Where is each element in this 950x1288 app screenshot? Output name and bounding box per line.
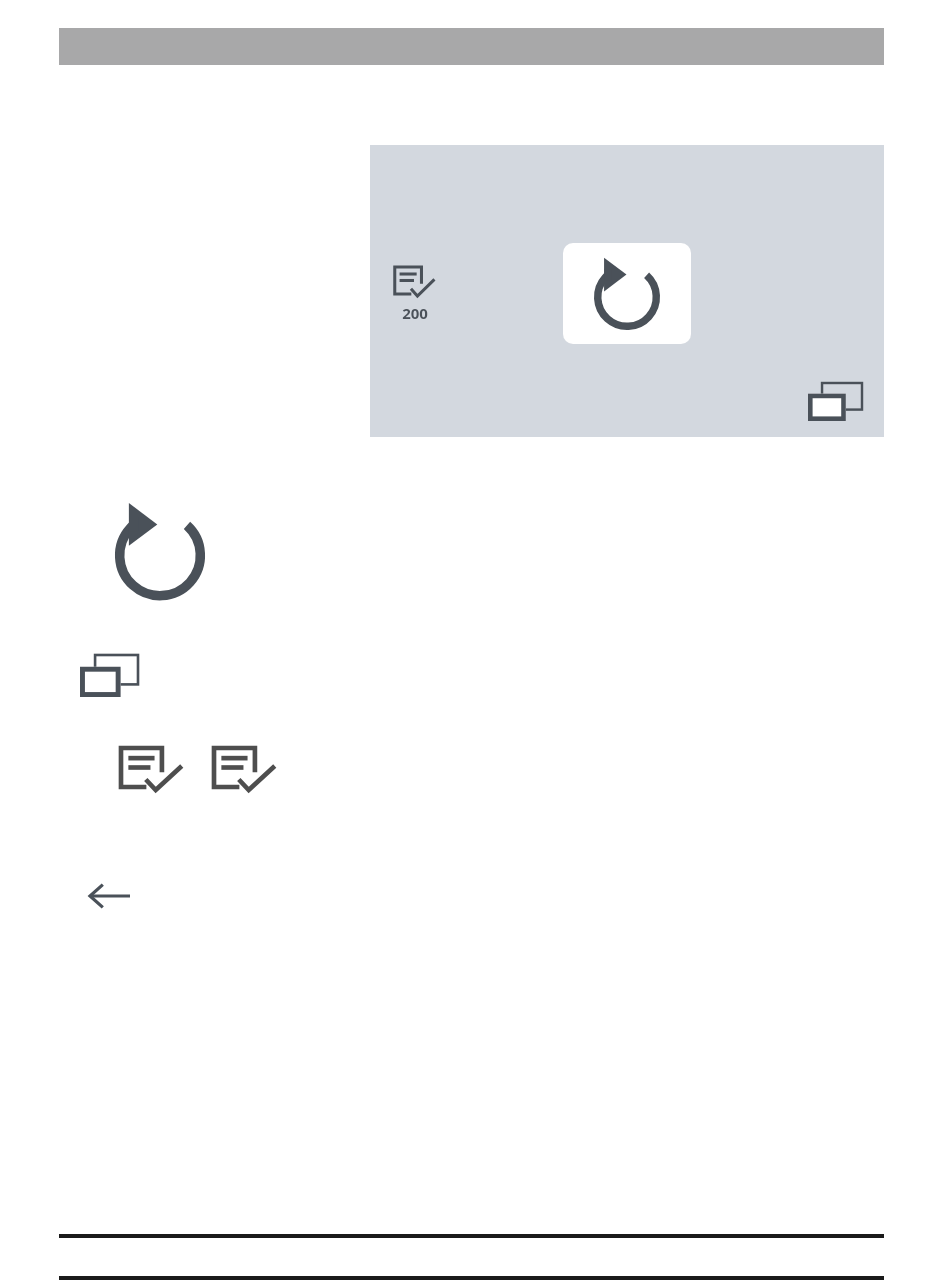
button[interactable]: Windows [808, 383, 862, 421]
button[interactable]: Task list complete [121, 748, 183, 798]
button[interactable]: Windows [80, 655, 138, 697]
button[interactable]: Refresh [112, 503, 208, 599]
button[interactable]: Task list complete [214, 748, 276, 798]
button[interactable]: 200 tasks complete [392, 267, 438, 321]
staticText: 200 [392, 303, 438, 321]
button[interactable]: Refresh [563, 243, 691, 344]
button[interactable]: Back [90, 877, 130, 915]
